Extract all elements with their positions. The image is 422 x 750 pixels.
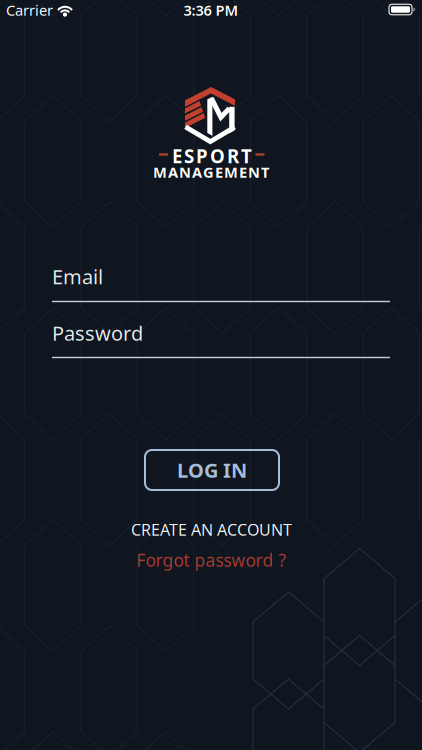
button[interactable]: Forgot password ? [111,551,311,569]
staticText: CREATE AN ACCOUNT [131,519,292,540]
button[interactable]: CREATE AN ACCOUNT [91,520,331,538]
staticText: Password [52,320,143,346]
button[interactable]: LOG IN [145,450,279,490]
staticText: 3:36 PM [183,0,238,20]
staticText: M A N A G E M E N T [153,162,269,182]
staticText: Forgot password ? [136,548,286,571]
staticText: LOG IN [177,457,247,483]
button[interactable]: Email [0,253,422,309]
staticText: Email [52,263,103,290]
button[interactable]: Password [0,309,422,365]
staticText: Carrier [6,0,53,20]
staticText: E S P O R T [172,144,252,168]
